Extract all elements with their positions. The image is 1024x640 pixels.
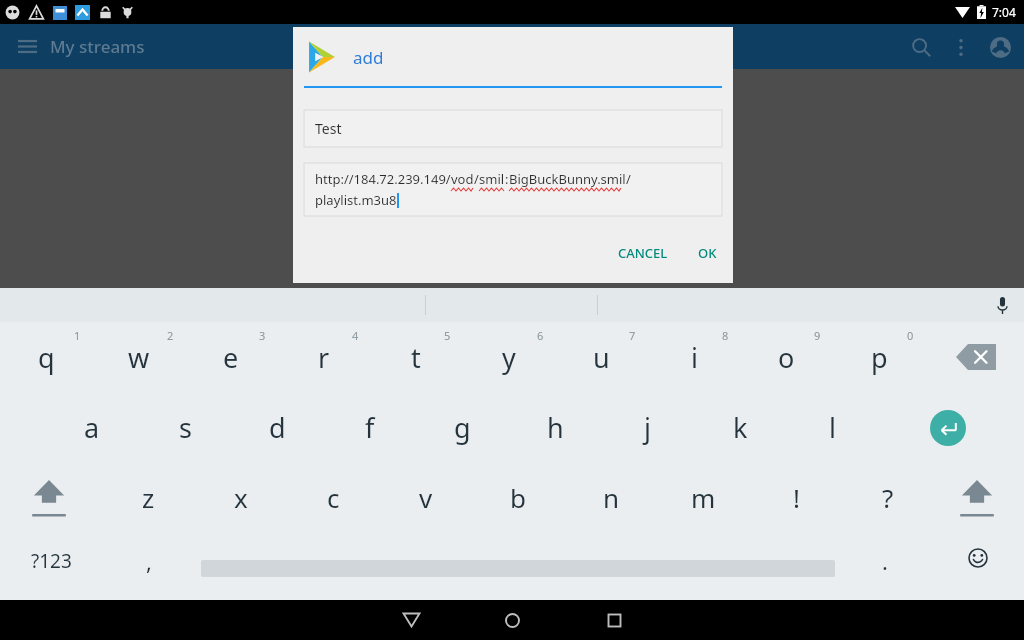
button[interactable]: Voice input (990, 293, 1014, 317)
button[interactable]: CANCEL (609, 237, 677, 269)
staticText: / (626, 170, 631, 188)
staticText: g (454, 409, 471, 446)
staticText: c (327, 480, 340, 515)
button[interactable]: ! (750, 462, 842, 532)
staticText: a (84, 409, 100, 446)
button[interactable]: Recent apps (564, 600, 664, 640)
button[interactable]: ? (842, 462, 934, 532)
staticText: l (829, 409, 836, 446)
staticText: b (510, 480, 526, 515)
staticText: o (778, 339, 795, 376)
button[interactable]: u (555, 322, 647, 392)
button[interactable]: Back (361, 600, 461, 640)
staticText: 5 (444, 328, 451, 343)
button[interactable]: Backspace (930, 322, 1022, 392)
button[interactable]: Shift (956, 478, 998, 518)
button[interactable]: Test (304, 110, 722, 147)
staticText: h (547, 409, 564, 446)
staticText: n (603, 480, 620, 515)
staticText: OK (698, 244, 717, 262)
button[interactable]: o (740, 322, 832, 392)
button[interactable]: g (416, 392, 508, 462)
staticText: ! (793, 480, 800, 515)
staticText: j (644, 409, 651, 446)
staticText: CANCEL (618, 244, 668, 262)
button[interactable]: v (380, 462, 472, 532)
button[interactable]: Account (978, 25, 1022, 69)
staticText: My streams (50, 35, 145, 58)
button[interactable]: . (850, 532, 920, 590)
staticText: 6 (537, 328, 544, 343)
staticText: / (474, 170, 479, 188)
button[interactable]: OK (689, 237, 726, 269)
button[interactable]: Open navigation drawer (5, 24, 50, 69)
staticText: BigBuckBunny.smil (509, 170, 626, 188)
staticText: v (419, 480, 433, 515)
staticText: r (318, 339, 330, 376)
staticText: 7 (629, 328, 636, 343)
button[interactable]: q (0, 322, 92, 392)
staticText: Test (315, 119, 342, 138)
staticText: 1 (74, 328, 81, 343)
button[interactable]: x (195, 462, 287, 532)
staticText: playlist.m3u8 (315, 191, 397, 209)
staticText: e (223, 339, 239, 376)
button[interactable]: c (287, 462, 379, 532)
button[interactable]: m (657, 462, 749, 532)
button[interactable]: ?123 (12, 532, 90, 590)
staticText: i (691, 339, 698, 376)
button[interactable]: , (110, 532, 188, 590)
staticText: f (365, 409, 375, 446)
button[interactable]: More options (942, 28, 980, 66)
button[interactable]: y (463, 322, 555, 392)
staticText: ?123 (31, 548, 72, 574)
staticText: 7:04 (992, 4, 1016, 20)
staticText: z (142, 480, 155, 515)
button[interactable]: l (786, 392, 878, 462)
button[interactable]: Enter (930, 410, 966, 446)
staticText: w (128, 339, 150, 376)
button[interactable]: t (370, 322, 462, 392)
button[interactable]: i (648, 322, 740, 392)
button[interactable]: w (93, 322, 185, 392)
button[interactable]: http://184.72.239.149/ (304, 163, 722, 216)
button[interactable]: b (472, 462, 564, 532)
staticText: : (505, 170, 509, 188)
staticText: q (38, 339, 55, 376)
staticText: http://184.72.239.149/ (315, 170, 451, 188)
staticText: k (733, 409, 748, 446)
button[interactable]: h (509, 392, 601, 462)
staticText: x (234, 480, 248, 515)
staticText: 9 (814, 328, 821, 343)
staticText: s (179, 409, 192, 446)
button[interactable]: z (102, 462, 194, 532)
button[interactable]: j (601, 392, 693, 462)
button[interactable]: k (694, 392, 786, 462)
button[interactable]: Emoji (956, 536, 1000, 580)
button[interactable]: e (185, 322, 277, 392)
button[interactable]: p (833, 322, 925, 392)
staticText: smil (479, 170, 505, 188)
button[interactable]: r (278, 322, 370, 392)
staticText: 8 (722, 328, 729, 343)
staticText: 3 (259, 328, 266, 343)
staticText: u (593, 339, 610, 376)
button[interactable]: d (231, 392, 323, 462)
button[interactable]: n (565, 462, 657, 532)
staticText: 4 (352, 328, 359, 343)
staticText: t (411, 339, 421, 376)
staticText: p (871, 339, 888, 376)
staticText: ? (882, 480, 894, 515)
staticText: 2 (167, 328, 174, 343)
button[interactable]: Shift (28, 478, 70, 518)
staticText: d (269, 409, 286, 446)
button[interactable]: s (139, 392, 231, 462)
button[interactable]: a (46, 392, 138, 462)
button[interactable]: f (324, 392, 416, 462)
staticText: m (691, 480, 716, 515)
button[interactable]: Search (899, 25, 943, 69)
staticText: vod (451, 170, 474, 188)
staticText: add (353, 46, 384, 69)
button[interactable]: Home (462, 600, 562, 640)
